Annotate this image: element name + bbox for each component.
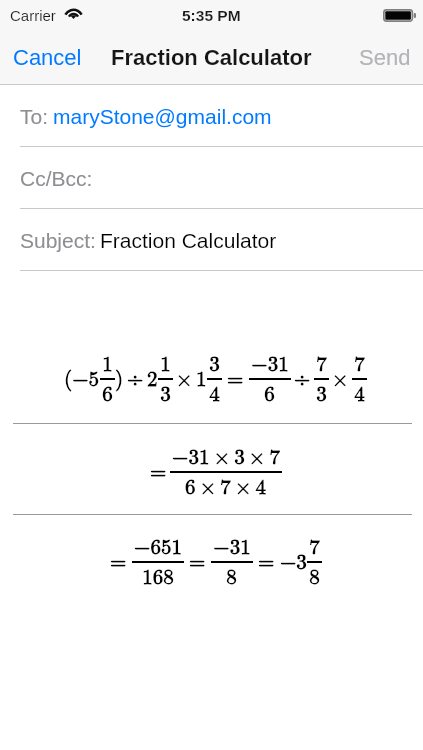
staticText: Send (359, 45, 411, 70)
staticText: 6 (264, 377, 275, 407)
staticText: −31 (251, 347, 289, 377)
staticText: 2 (147, 362, 158, 392)
staticText: 3 (209, 347, 220, 377)
staticText: 1 (160, 347, 171, 377)
staticText: −31 × 3 × 7 (172, 440, 280, 470)
staticText: maryStone@gmail.com (53, 105, 272, 128)
staticText: 7 (354, 347, 365, 377)
staticText: 3 (160, 377, 171, 407)
button[interactable]: To: (0, 85, 423, 147)
staticText: 6 × 7 × 4 (185, 470, 266, 500)
staticText: 1 (102, 347, 113, 377)
button[interactable]: Cancel (0, 37, 92, 78)
staticText: 1 (196, 362, 207, 392)
staticText: 8 (309, 560, 320, 590)
button[interactable]: Subject: (0, 209, 423, 271)
staticText: (−5 (64, 362, 100, 392)
staticText: = (189, 545, 206, 575)
staticText: 168 (142, 560, 174, 590)
staticText: 7 (309, 530, 320, 560)
other: Battery full (383, 9, 416, 22)
staticText: 4 (209, 377, 220, 407)
staticText: = (110, 545, 127, 575)
staticText: 5:35 PM (182, 7, 241, 24)
staticText: 7 (316, 347, 327, 377)
button[interactable]: Cc/Bcc: (0, 147, 423, 209)
staticText: ) (115, 362, 124, 392)
staticText: Cancel (13, 45, 82, 70)
staticText: = (227, 362, 244, 392)
other: Wi‑Fi signal (65, 6, 82, 19)
staticText: 3 (316, 377, 327, 407)
staticText: −651 (134, 530, 182, 560)
staticText: Fraction Calculator (111, 45, 312, 70)
staticText: 6 (102, 377, 113, 407)
staticText: × (332, 362, 349, 392)
staticText: 4 (354, 377, 365, 407)
staticText: = (150, 455, 167, 485)
staticText: −3 (280, 545, 307, 575)
staticText: To: (20, 105, 49, 128)
staticText: Cc/Bcc: (20, 167, 93, 190)
staticText: Carrier (10, 7, 56, 24)
staticText: −31 (213, 530, 251, 560)
staticText: Fraction Calculator (100, 229, 277, 252)
staticText: 8 (226, 560, 237, 590)
staticText: = (258, 545, 275, 575)
staticText: ÷ (127, 362, 144, 392)
staticText: ÷ (294, 362, 311, 392)
staticText: Subject: (20, 229, 96, 252)
button[interactable]: Send (349, 37, 423, 78)
staticText: × (176, 362, 193, 392)
